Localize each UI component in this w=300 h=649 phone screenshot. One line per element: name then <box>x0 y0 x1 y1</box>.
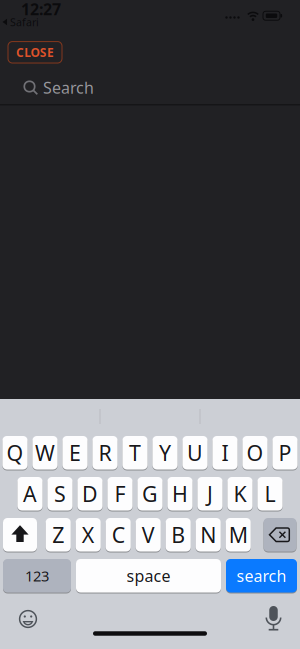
button[interactable]: F <box>107 477 133 510</box>
staticText: Safari <box>10 15 39 29</box>
button[interactable]: T <box>122 436 148 469</box>
staticText: S <box>54 480 66 508</box>
button[interactable]: I <box>212 436 238 469</box>
button[interactable]: M <box>226 518 251 551</box>
button[interactable]: Emoji <box>16 607 40 631</box>
button[interactable]: Back to Safari <box>2 15 39 29</box>
staticText: CLOSE <box>16 44 54 60</box>
button[interactable]: C <box>106 518 131 551</box>
button[interactable]: H <box>167 477 193 510</box>
staticText: Z <box>52 521 64 549</box>
staticText: F <box>114 480 125 508</box>
staticText: O <box>246 439 263 467</box>
button[interactable]: S <box>47 477 73 510</box>
button[interactable]: N <box>196 518 221 551</box>
button[interactable]: V <box>136 518 161 551</box>
staticText: M <box>229 521 248 549</box>
staticText: K <box>233 480 246 508</box>
button[interactable]: Y <box>152 436 178 469</box>
staticText: space <box>126 565 170 586</box>
staticText: D <box>82 480 98 508</box>
staticText: Y <box>159 439 171 467</box>
button[interactable]: Search <box>8 70 292 104</box>
button[interactable]: space <box>76 559 221 592</box>
button[interactable]: K <box>227 477 253 510</box>
button[interactable]: U <box>182 436 208 469</box>
staticText: B <box>171 521 185 549</box>
button[interactable]: L <box>257 477 283 510</box>
button[interactable]: Delete <box>263 518 296 551</box>
staticText: 123 <box>25 566 49 585</box>
staticText: H <box>172 480 188 508</box>
button[interactable]: E <box>62 436 88 469</box>
button[interactable]: D <box>77 477 103 510</box>
button[interactable]: A <box>17 477 43 510</box>
staticText: J <box>207 480 213 508</box>
button[interactable]: R <box>92 436 118 469</box>
staticText: search <box>236 565 286 586</box>
staticText: T <box>129 439 141 467</box>
staticText: R <box>98 439 111 467</box>
button[interactable]: W <box>32 436 58 469</box>
button[interactable]: P <box>272 436 298 469</box>
button[interactable]: Q <box>2 436 28 469</box>
staticText: I <box>221 439 228 467</box>
staticText: G <box>142 480 158 508</box>
button[interactable]: X <box>76 518 101 551</box>
button[interactable]: J <box>197 477 223 510</box>
staticText: P <box>278 439 291 467</box>
button[interactable]: Z <box>46 518 71 551</box>
staticText: X <box>82 521 95 549</box>
staticText: Q <box>6 439 23 467</box>
staticText: 12:27 <box>21 0 61 20</box>
button[interactable]: G <box>137 477 163 510</box>
staticText: Search <box>43 77 94 98</box>
staticText: E <box>69 439 81 467</box>
staticText: U <box>187 439 203 467</box>
button[interactable]: CLOSE <box>8 41 62 63</box>
button[interactable]: 123 <box>3 559 71 592</box>
button[interactable]: Dictation <box>261 604 285 634</box>
staticText: V <box>142 521 155 549</box>
staticText: L <box>264 480 275 508</box>
button[interactable]: search <box>226 559 297 592</box>
staticText: W <box>35 439 55 467</box>
staticText: A <box>23 480 37 508</box>
staticText: N <box>200 521 216 549</box>
button[interactable]: Shift <box>3 518 37 551</box>
button[interactable]: B <box>166 518 191 551</box>
button[interactable]: O <box>242 436 268 469</box>
staticText: C <box>112 521 125 549</box>
